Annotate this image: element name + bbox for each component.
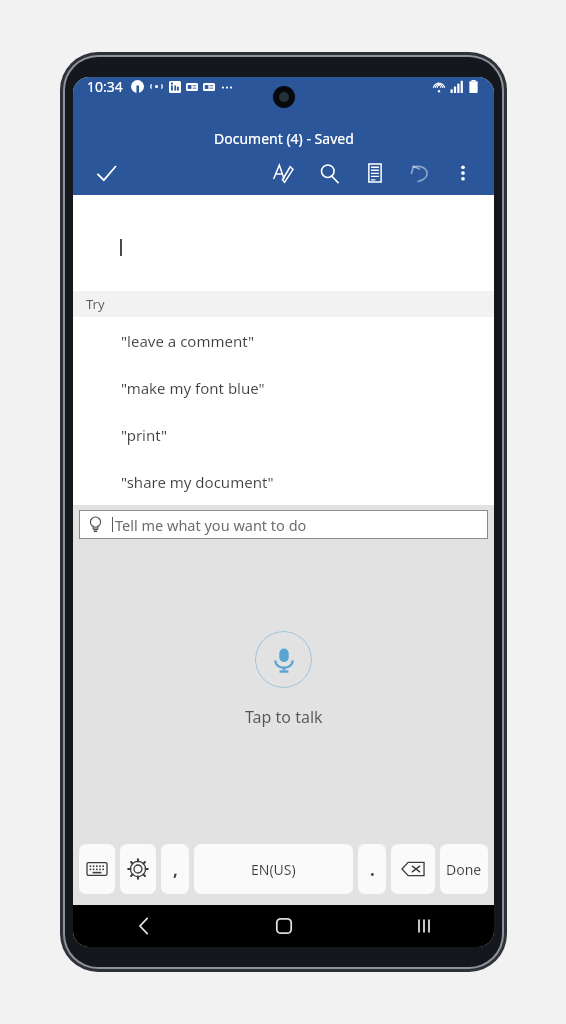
button[interactable]: Ribbon xyxy=(356,154,394,192)
staticText: Document (4) - Saved xyxy=(214,129,354,148)
button[interactable]: Settings xyxy=(120,844,156,894)
button[interactable]: Done editing xyxy=(89,156,123,190)
button[interactable]: Done xyxy=(440,844,488,894)
button[interactable]: Home xyxy=(214,905,354,947)
button[interactable]: "make my font blue" xyxy=(73,364,494,411)
button[interactable]: EN(US) xyxy=(194,844,353,894)
staticText: Tap to talk xyxy=(245,706,323,728)
button[interactable]: Search xyxy=(310,154,348,192)
button[interactable]: Draw xyxy=(264,154,302,192)
button[interactable]: Backspace xyxy=(391,844,435,894)
button[interactable]: , xyxy=(161,844,189,894)
staticText: EN(US) xyxy=(251,860,296,879)
button[interactable]: Recents xyxy=(354,905,494,947)
button[interactable]: "share my document" xyxy=(73,458,494,505)
staticText: "make my font blue" xyxy=(121,378,265,398)
button[interactable]: "print" xyxy=(73,411,494,458)
staticText: "print" xyxy=(121,425,168,445)
staticText: Try xyxy=(86,295,105,313)
button[interactable]: Keyboard xyxy=(79,844,115,894)
button[interactable]: . xyxy=(358,844,386,894)
staticText: Tell me what you want to do xyxy=(115,515,307,535)
button[interactable]: Tell me what you want to do xyxy=(79,510,488,539)
staticText: 10:34 xyxy=(87,77,123,96)
button[interactable]: More options xyxy=(446,156,480,190)
button[interactable]: Tap to talk xyxy=(255,631,312,688)
button[interactable]: "leave a comment" xyxy=(73,317,494,364)
button[interactable]: Undo xyxy=(402,154,440,192)
button[interactable]: Back xyxy=(73,905,214,947)
staticText: Done xyxy=(446,860,482,879)
staticText: . xyxy=(370,858,375,881)
staticText: "share my document" xyxy=(121,472,274,492)
staticText: "leave a comment" xyxy=(121,331,255,351)
staticText: , xyxy=(173,858,178,881)
